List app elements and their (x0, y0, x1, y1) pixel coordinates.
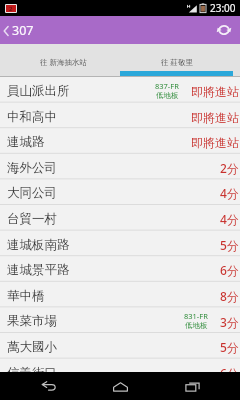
staticText: 831-FR (184, 311, 208, 321)
staticText: 連城路 (7, 134, 45, 150)
staticText: 連城景平路 (7, 262, 70, 278)
button[interactable]: Refresh (214, 20, 234, 40)
staticText: 即將進站 (191, 110, 239, 125)
button[interactable]: 往 莊敬里 (120, 44, 233, 76)
button[interactable]: 萬大國小 (0, 333, 240, 359)
staticText: 低地板 (156, 91, 179, 100)
staticText: 即將進站 (191, 84, 239, 99)
button[interactable]: 信義街口 (0, 359, 240, 372)
staticText: 大同公司 (7, 185, 57, 201)
staticText: 低地板 (185, 321, 208, 330)
button[interactable]: 華中橋 (0, 282, 240, 308)
staticText: 中和高中 (7, 109, 57, 125)
button[interactable]: Home (96, 372, 144, 400)
button[interactable]: Recents (168, 372, 216, 400)
staticText: 5分 (220, 339, 239, 355)
staticText: 2分 (220, 160, 239, 176)
staticText: 信義街口 (7, 365, 57, 372)
staticText: 3分 (220, 314, 239, 330)
staticText: 5分 (220, 237, 239, 253)
staticText: 23:00 (210, 1, 236, 15)
staticText: 8分 (220, 288, 239, 304)
staticText: 萬大國小 (7, 339, 57, 355)
button[interactable]: 員山派出所 (0, 77, 240, 103)
button[interactable]: 海外公司 (0, 154, 240, 180)
staticText: 837-FR (155, 81, 179, 91)
button[interactable]: 連城路 (0, 128, 240, 154)
button[interactable]: 大同公司 (0, 179, 240, 205)
button[interactable]: 往 新海抽水站 (7, 44, 120, 76)
button[interactable]: 連城板南路 (0, 231, 240, 257)
staticText: 員山派出所 (7, 83, 70, 99)
button[interactable]: 連城景平路 (0, 256, 240, 282)
button[interactable]: 307 (0, 18, 38, 43)
staticText: 6分 (220, 365, 239, 372)
button[interactable]: 中和高中 (0, 103, 240, 129)
staticText: 連城板南路 (7, 237, 70, 253)
staticText: 6分 (220, 262, 239, 278)
staticText: 海外公司 (7, 160, 57, 176)
staticText: 2 (9, 5, 13, 12)
button[interactable]: Back (24, 372, 72, 400)
button[interactable]: 台貿一村 (0, 205, 240, 231)
staticText: 4分 (220, 211, 239, 227)
staticText: 即將進站 (191, 135, 239, 150)
staticText: 華中橋 (7, 288, 45, 304)
staticText: 果菜市場 (7, 313, 57, 329)
staticText: 往 莊敬里 (161, 57, 193, 67)
staticText: 307 (12, 22, 34, 39)
staticText: 4分 (220, 185, 239, 201)
staticText: 往 新海抽水站 (40, 57, 87, 67)
staticText: 台貿一村 (7, 211, 57, 227)
button[interactable]: 果菜市場 (0, 307, 240, 333)
